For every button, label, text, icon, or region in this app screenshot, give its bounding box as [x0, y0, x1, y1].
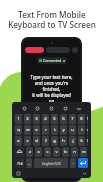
button[interactable]: Sticker — [62, 105, 69, 112]
staticText: English (US) — [42, 161, 61, 166]
staticText: m — [82, 149, 86, 155]
staticText: k — [80, 138, 83, 144]
staticText: 6 — [62, 116, 65, 122]
button[interactable]: v — [53, 147, 60, 157]
staticText: 4 — [44, 116, 47, 122]
staticText: e — [35, 127, 38, 133]
staticText: 2 — [26, 116, 29, 122]
button[interactable]: , — [26, 158, 32, 168]
staticText: Text From Mobile Keyboard to TV Screen — [8, 9, 96, 31]
staticText: o — [87, 127, 88, 133]
button[interactable]: 7 — [69, 114, 76, 124]
button[interactable]: Shift — [15, 147, 24, 157]
button[interactable]: q — [15, 125, 22, 135]
button[interactable]: Voice input — [34, 105, 41, 112]
button[interactable]: f — [42, 136, 49, 146]
button[interactable]: k — [78, 136, 85, 146]
staticText: w — [26, 127, 30, 133]
button[interactable]: z — [26, 147, 33, 157]
button[interactable]: . — [70, 158, 76, 168]
button[interactable]: b — [62, 147, 69, 157]
button[interactable]: g — [51, 136, 58, 146]
button[interactable]: i — [78, 125, 85, 135]
button[interactable]: 3 — [33, 114, 40, 124]
button[interactable]: c — [44, 147, 51, 157]
button[interactable]: Hide keyboard — [82, 171, 87, 176]
button[interactable]: m — [80, 147, 87, 157]
button[interactable]: Clipboard — [16, 171, 21, 176]
staticText: f — [45, 138, 47, 144]
staticText: t — [54, 127, 56, 133]
button[interactable]: d — [33, 136, 40, 146]
button[interactable]: t — [51, 125, 58, 135]
staticText: 9 — [87, 116, 88, 122]
button[interactable]: Settings — [72, 47, 78, 53]
staticText: x — [37, 149, 40, 155]
staticText: Connected — [43, 58, 62, 63]
staticText: l — [87, 138, 88, 144]
button[interactable]: Connected — [39, 58, 65, 63]
button[interactable]: w — [24, 125, 31, 135]
staticText: a — [17, 138, 20, 144]
button[interactable]: Live TV — [25, 47, 44, 53]
staticText: d — [35, 138, 38, 144]
button[interactable]: 4 — [42, 114, 49, 124]
staticText: u — [71, 127, 74, 133]
button[interactable]: ?1# — [15, 158, 24, 168]
button[interactable]: e — [33, 125, 40, 135]
button[interactable]: r — [42, 125, 49, 135]
button[interactable]: l — [87, 136, 88, 146]
button[interactable]: a — [15, 136, 22, 146]
button[interactable]: n — [71, 147, 78, 157]
staticText: z — [29, 149, 31, 155]
staticText: . — [72, 160, 74, 166]
button[interactable]: 2 — [24, 114, 31, 124]
button[interactable]: GIF — [48, 105, 55, 112]
staticText: r — [45, 127, 47, 133]
button[interactable]: 1 — [15, 114, 22, 124]
button[interactable]: h — [60, 136, 67, 146]
button[interactable]: y — [60, 125, 67, 135]
button[interactable]: 5 — [51, 114, 58, 124]
staticText: y — [62, 127, 65, 133]
button[interactable]: u — [69, 125, 76, 135]
button[interactable]: Settings — [21, 105, 28, 112]
button[interactable]: Enter — [78, 158, 88, 168]
button[interactable]: o — [87, 125, 88, 135]
staticText: ?1# — [17, 161, 23, 166]
staticText: 7 — [71, 116, 74, 122]
staticText: 5 — [53, 116, 56, 122]
staticText: h — [62, 138, 65, 144]
staticText: 1 — [17, 116, 20, 122]
button[interactable]: x — [35, 147, 42, 157]
button[interactable]: s — [24, 136, 31, 146]
button[interactable]: j — [69, 136, 76, 146]
staticText: g — [53, 138, 56, 144]
staticText: q — [17, 127, 20, 133]
staticText: s — [26, 138, 29, 144]
staticText: c — [46, 149, 49, 155]
staticText: n — [73, 149, 76, 155]
staticText: j — [72, 138, 74, 144]
staticText: 8 — [80, 116, 83, 122]
staticText: Type your text here, and once you're fin… — [29, 74, 74, 110]
staticText: , — [28, 160, 30, 166]
button[interactable]: 8 — [78, 114, 85, 124]
staticText: i — [81, 127, 83, 133]
staticText: 3 — [35, 116, 38, 122]
staticText: b — [64, 149, 67, 155]
button[interactable]: 6 — [60, 114, 67, 124]
button[interactable]: English (US) — [34, 158, 68, 168]
button[interactable]: 9 — [87, 114, 88, 124]
button[interactable]: Devices — [46, 47, 70, 53]
staticText: v — [55, 149, 58, 155]
button[interactable]: More options — [75, 105, 82, 112]
